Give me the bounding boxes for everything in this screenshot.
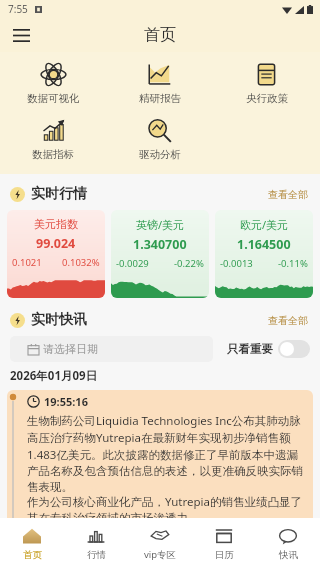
button[interactable]: vip专区 bbox=[128, 518, 192, 568]
button[interactable]: 精研报告 bbox=[106, 58, 213, 108]
staticText: -0.11% bbox=[278, 257, 308, 270]
staticText: 0.1021 bbox=[12, 256, 42, 269]
button[interactable]: 欧元/美元 bbox=[215, 210, 313, 298]
staticText: 0.1032% bbox=[62, 256, 100, 269]
staticText: -0.0029 bbox=[116, 257, 149, 270]
staticText: 欧元/美元 bbox=[240, 217, 289, 232]
staticText: 首页 bbox=[23, 549, 42, 561]
button[interactable]: 请选择日期 bbox=[10, 336, 213, 362]
button[interactable]: 首页 bbox=[0, 518, 64, 568]
staticText: vip专区 bbox=[144, 548, 177, 561]
staticText: 查看全部 bbox=[268, 314, 308, 327]
staticText: 数据指标 bbox=[32, 148, 74, 161]
button[interactable]: 日历 bbox=[192, 518, 256, 568]
staticText: 行情 bbox=[87, 549, 106, 561]
staticText: 快讯 bbox=[279, 549, 298, 561]
staticText: 查看全部 bbox=[268, 188, 308, 201]
staticText: 1.164500 bbox=[237, 236, 291, 253]
staticText: 精研报告 bbox=[139, 92, 181, 105]
staticText: 数据可视化 bbox=[27, 92, 80, 105]
staticText: 美元指数 bbox=[34, 217, 78, 231]
button[interactable]: 英镑/美元 bbox=[111, 210, 209, 298]
button[interactable]: 查看全部 bbox=[266, 186, 310, 203]
button[interactable]: Menu bbox=[6, 20, 36, 50]
staticText: 请选择日期 bbox=[43, 342, 98, 356]
button[interactable]: 数据可视化 bbox=[0, 58, 106, 108]
staticText: 2026年01月09日 bbox=[10, 368, 98, 384]
staticText: 99.024 bbox=[36, 235, 76, 252]
staticText: 只看重要 bbox=[227, 342, 273, 356]
button[interactable]: 美元指数 bbox=[7, 210, 105, 298]
staticText: 日历 bbox=[215, 549, 234, 561]
button[interactable]: 数据指标 bbox=[0, 114, 106, 164]
staticText: 1.340700 bbox=[133, 236, 187, 253]
staticText: 实时行情 bbox=[31, 185, 87, 203]
button[interactable]: 央行政策 bbox=[213, 58, 320, 108]
button[interactable]: 驱动分析 bbox=[106, 114, 213, 164]
staticText: 生物制药公司Liquidia Technologies Inc公布其肺动脉高压治… bbox=[27, 413, 305, 494]
staticText: -0.22% bbox=[174, 257, 204, 270]
button[interactable]: 只看重要 bbox=[227, 340, 310, 358]
button[interactable]: 快讯 bbox=[256, 518, 320, 568]
button[interactable]: 行情 bbox=[64, 518, 128, 568]
staticText: 7:55 bbox=[8, 2, 28, 16]
button[interactable]: 19:55:16 bbox=[7, 390, 313, 518]
staticText: 驱动分析 bbox=[139, 148, 181, 161]
staticText: 央行政策 bbox=[246, 92, 288, 105]
staticText: 实时快讯 bbox=[31, 311, 87, 329]
staticText: 作为公司核心商业化产品，Yutrepia的销售业绩凸显了其在专科治疗领域的市场渗… bbox=[27, 494, 305, 518]
staticText: 英镑/美元 bbox=[136, 217, 185, 232]
staticText: 首页 bbox=[144, 25, 176, 45]
button[interactable]: 查看全部 bbox=[266, 312, 310, 329]
staticText: 19:55:16 bbox=[44, 394, 88, 409]
staticText: -0.0013 bbox=[220, 257, 253, 270]
